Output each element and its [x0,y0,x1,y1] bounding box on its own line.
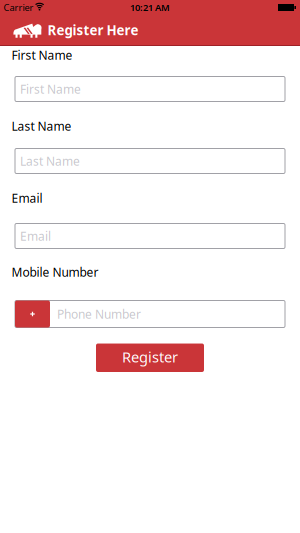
staticText: 10:21 AM [130,1,170,14]
button[interactable]: Register [96,343,204,372]
button[interactable]: Last Name [15,148,285,173]
button[interactable]: First Name [15,76,285,101]
staticText: First Name [11,47,72,63]
button[interactable]: Country code [15,300,50,327]
staticText: Mobile Number [11,264,98,280]
staticText: Email [11,190,42,206]
staticText: Email [20,228,51,244]
staticText: Carrier [3,1,33,14]
button[interactable]: Phone Number [50,300,285,327]
button[interactable]: Email [15,223,285,248]
staticText: Last Name [20,153,80,169]
staticText: Register Here [47,21,138,39]
staticText: Phone Number [57,306,141,322]
staticText: Last Name [11,118,71,134]
staticText: Register [122,347,178,366]
staticText: First Name [20,81,81,97]
